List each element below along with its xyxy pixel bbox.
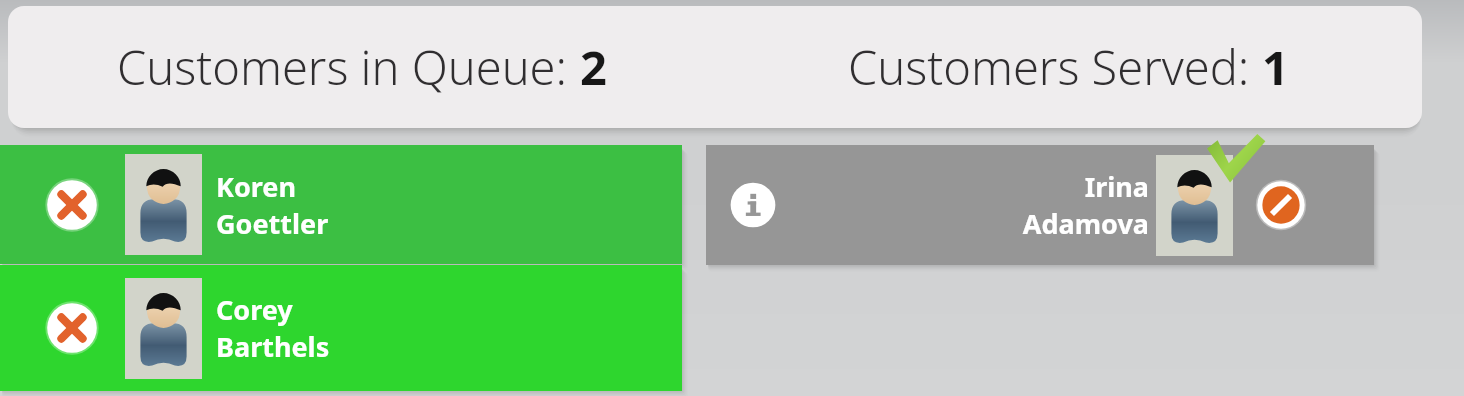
staticText: Corey [216, 291, 293, 328]
button[interactable]: Customer info [722, 174, 784, 236]
button[interactable]: Remove from queue [0, 265, 682, 391]
staticText: Irina [1084, 168, 1149, 205]
button[interactable]: Remove from queue [0, 145, 682, 264]
staticText: Customers in Queue: [117, 35, 580, 99]
staticText: 1 [1262, 35, 1289, 99]
staticText: Adamova [1022, 205, 1149, 242]
staticText: Customers Served: [848, 35, 1262, 99]
button[interactable]: Block customer [1250, 174, 1312, 236]
staticText: Koren [216, 168, 297, 205]
button[interactable]: Customers in Queue: [8, 6, 1422, 128]
button[interactable]: Remove from queue [41, 297, 103, 359]
staticText: Barthels [216, 328, 330, 365]
button[interactable]: Remove from queue [41, 174, 103, 236]
button[interactable]: Customer info [706, 145, 1374, 265]
staticText: 2 [580, 35, 607, 99]
staticText: Goettler [216, 205, 329, 242]
